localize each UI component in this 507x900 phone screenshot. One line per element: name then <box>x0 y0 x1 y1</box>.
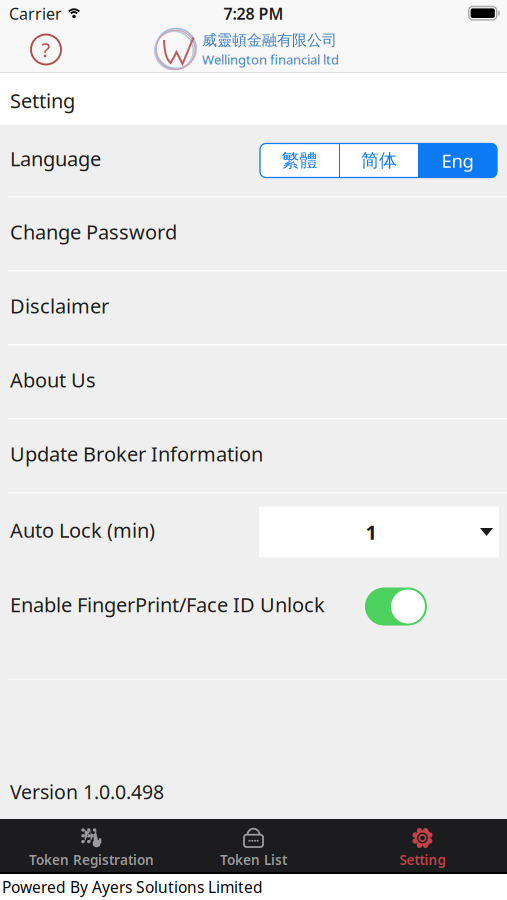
staticText: Change Password <box>10 218 177 245</box>
button[interactable]: 1 <box>259 506 499 557</box>
staticText: Version 1.0.0.498 <box>10 778 164 805</box>
button[interactable]: Enable FingerPrint/Face ID Unlock <box>365 587 427 625</box>
staticText: About Us <box>10 366 96 393</box>
button[interactable]: Eng <box>418 143 497 177</box>
staticText: Auto Lock (min) <box>10 516 155 544</box>
staticText: 简体 <box>361 149 397 172</box>
button[interactable]: Change Password <box>0 197 507 270</box>
staticText: 威靈頓金融有限公司 <box>202 31 337 50</box>
button[interactable]: Token Registration <box>0 819 169 872</box>
staticText: 1 <box>365 518 376 546</box>
button[interactable]: About Us <box>0 345 507 418</box>
button[interactable]: 简体 <box>340 143 418 177</box>
staticText: 繁體 <box>281 149 317 172</box>
staticText: Eng <box>441 148 473 173</box>
button[interactable]: Help <box>30 33 62 65</box>
staticText: Powered By Ayers Solutions Limited <box>2 876 263 897</box>
staticText: Carrier <box>9 3 62 24</box>
staticText: Token List <box>220 851 287 869</box>
staticText: Language <box>10 145 101 172</box>
staticText: Token Registration <box>29 851 154 869</box>
button[interactable]: Disclaimer <box>0 271 507 344</box>
staticText: Setting <box>10 87 75 114</box>
button[interactable]: Token List <box>169 819 338 872</box>
staticText: Wellington financial ltd <box>202 51 339 68</box>
button[interactable]: Update Broker Information <box>0 419 507 492</box>
staticText: ? <box>41 36 50 63</box>
button[interactable]: Setting <box>338 819 507 872</box>
staticText: Setting <box>399 851 445 869</box>
staticText: Update Broker Information <box>10 440 263 467</box>
button[interactable]: 繁體 <box>260 143 339 177</box>
staticText: Disclaimer <box>10 292 109 319</box>
staticText: Enable FingerPrint/Face ID Unlock <box>10 591 325 618</box>
staticText: 7:28 PM <box>223 3 283 24</box>
